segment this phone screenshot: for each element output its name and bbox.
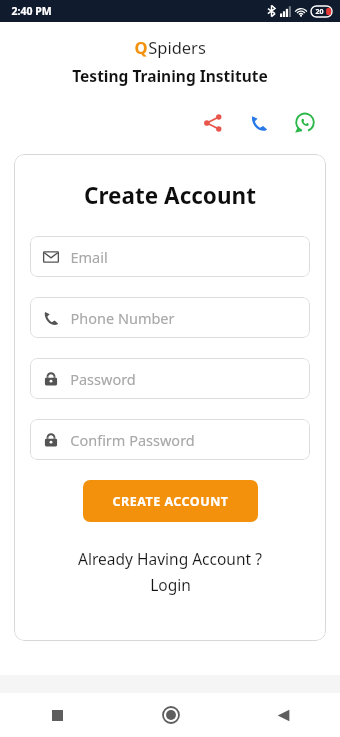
button[interactable]: Email: [30, 236, 310, 277]
staticText: Create Account: [84, 180, 256, 211]
staticText: Phone Number: [70, 308, 175, 328]
staticText: Email: [70, 247, 108, 267]
button[interactable]: Phone Number: [30, 297, 310, 338]
staticText: Q: [134, 36, 148, 58]
staticText: Password: [70, 369, 136, 389]
staticText: Confirm Password: [70, 430, 195, 450]
button[interactable]: Share: [196, 106, 230, 140]
button[interactable]: WhatsApp: [288, 106, 322, 140]
staticText: CREATE ACCOUNT: [112, 493, 229, 510]
button[interactable]: Home: [114, 693, 227, 737]
button[interactable]: Already Having Account ?: [30, 548, 310, 595]
staticText: Login: [150, 574, 191, 595]
button[interactable]: Password: [30, 358, 310, 399]
button[interactable]: CREATE ACCOUNT: [83, 480, 258, 522]
staticText: Testing Training Institute: [72, 65, 268, 86]
button[interactable]: Call: [242, 106, 276, 140]
staticText: Spiders: [148, 36, 206, 58]
button[interactable]: Back: [227, 693, 340, 737]
button[interactable]: Recent apps: [0, 693, 114, 737]
button[interactable]: Confirm Password: [30, 419, 310, 460]
staticText: 20: [315, 7, 324, 17]
staticText: 2:40 PM: [11, 4, 52, 18]
staticText: Already Having Account ?: [78, 548, 262, 569]
